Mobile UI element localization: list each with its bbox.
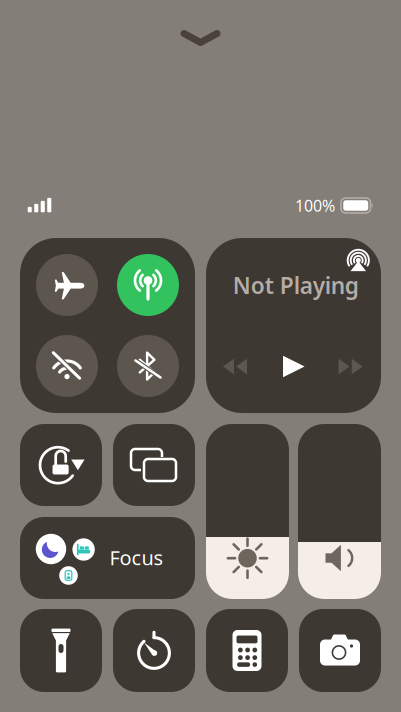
button[interactable]: Play	[282, 356, 306, 377]
staticText: 100%	[295, 195, 335, 216]
button[interactable]: Camera	[299, 609, 381, 692]
button[interactable]: Focus	[20, 517, 195, 599]
button[interactable]: Volume	[298, 424, 381, 599]
staticText: Not Playing	[233, 270, 359, 300]
button[interactable]: Next Track	[339, 359, 363, 374]
staticText: Focus	[109, 544, 163, 571]
button[interactable]: Rotation Lock	[20, 424, 102, 506]
button[interactable]: Screen Mirroring	[113, 424, 195, 506]
button[interactable]: Airplane Mode	[36, 254, 98, 316]
button[interactable]: Flashlight	[20, 609, 102, 692]
button[interactable]: Calculator	[206, 609, 288, 692]
button[interactable]: Timer	[113, 609, 195, 692]
button[interactable]: AirPlay	[347, 249, 370, 273]
button[interactable]: Brightness	[206, 424, 289, 599]
button[interactable]: Previous Track	[223, 359, 247, 374]
button[interactable]: Bluetooth	[117, 335, 179, 397]
button[interactable]: Cellular Data	[117, 254, 179, 316]
button[interactable]: Wi-Fi	[36, 335, 98, 397]
